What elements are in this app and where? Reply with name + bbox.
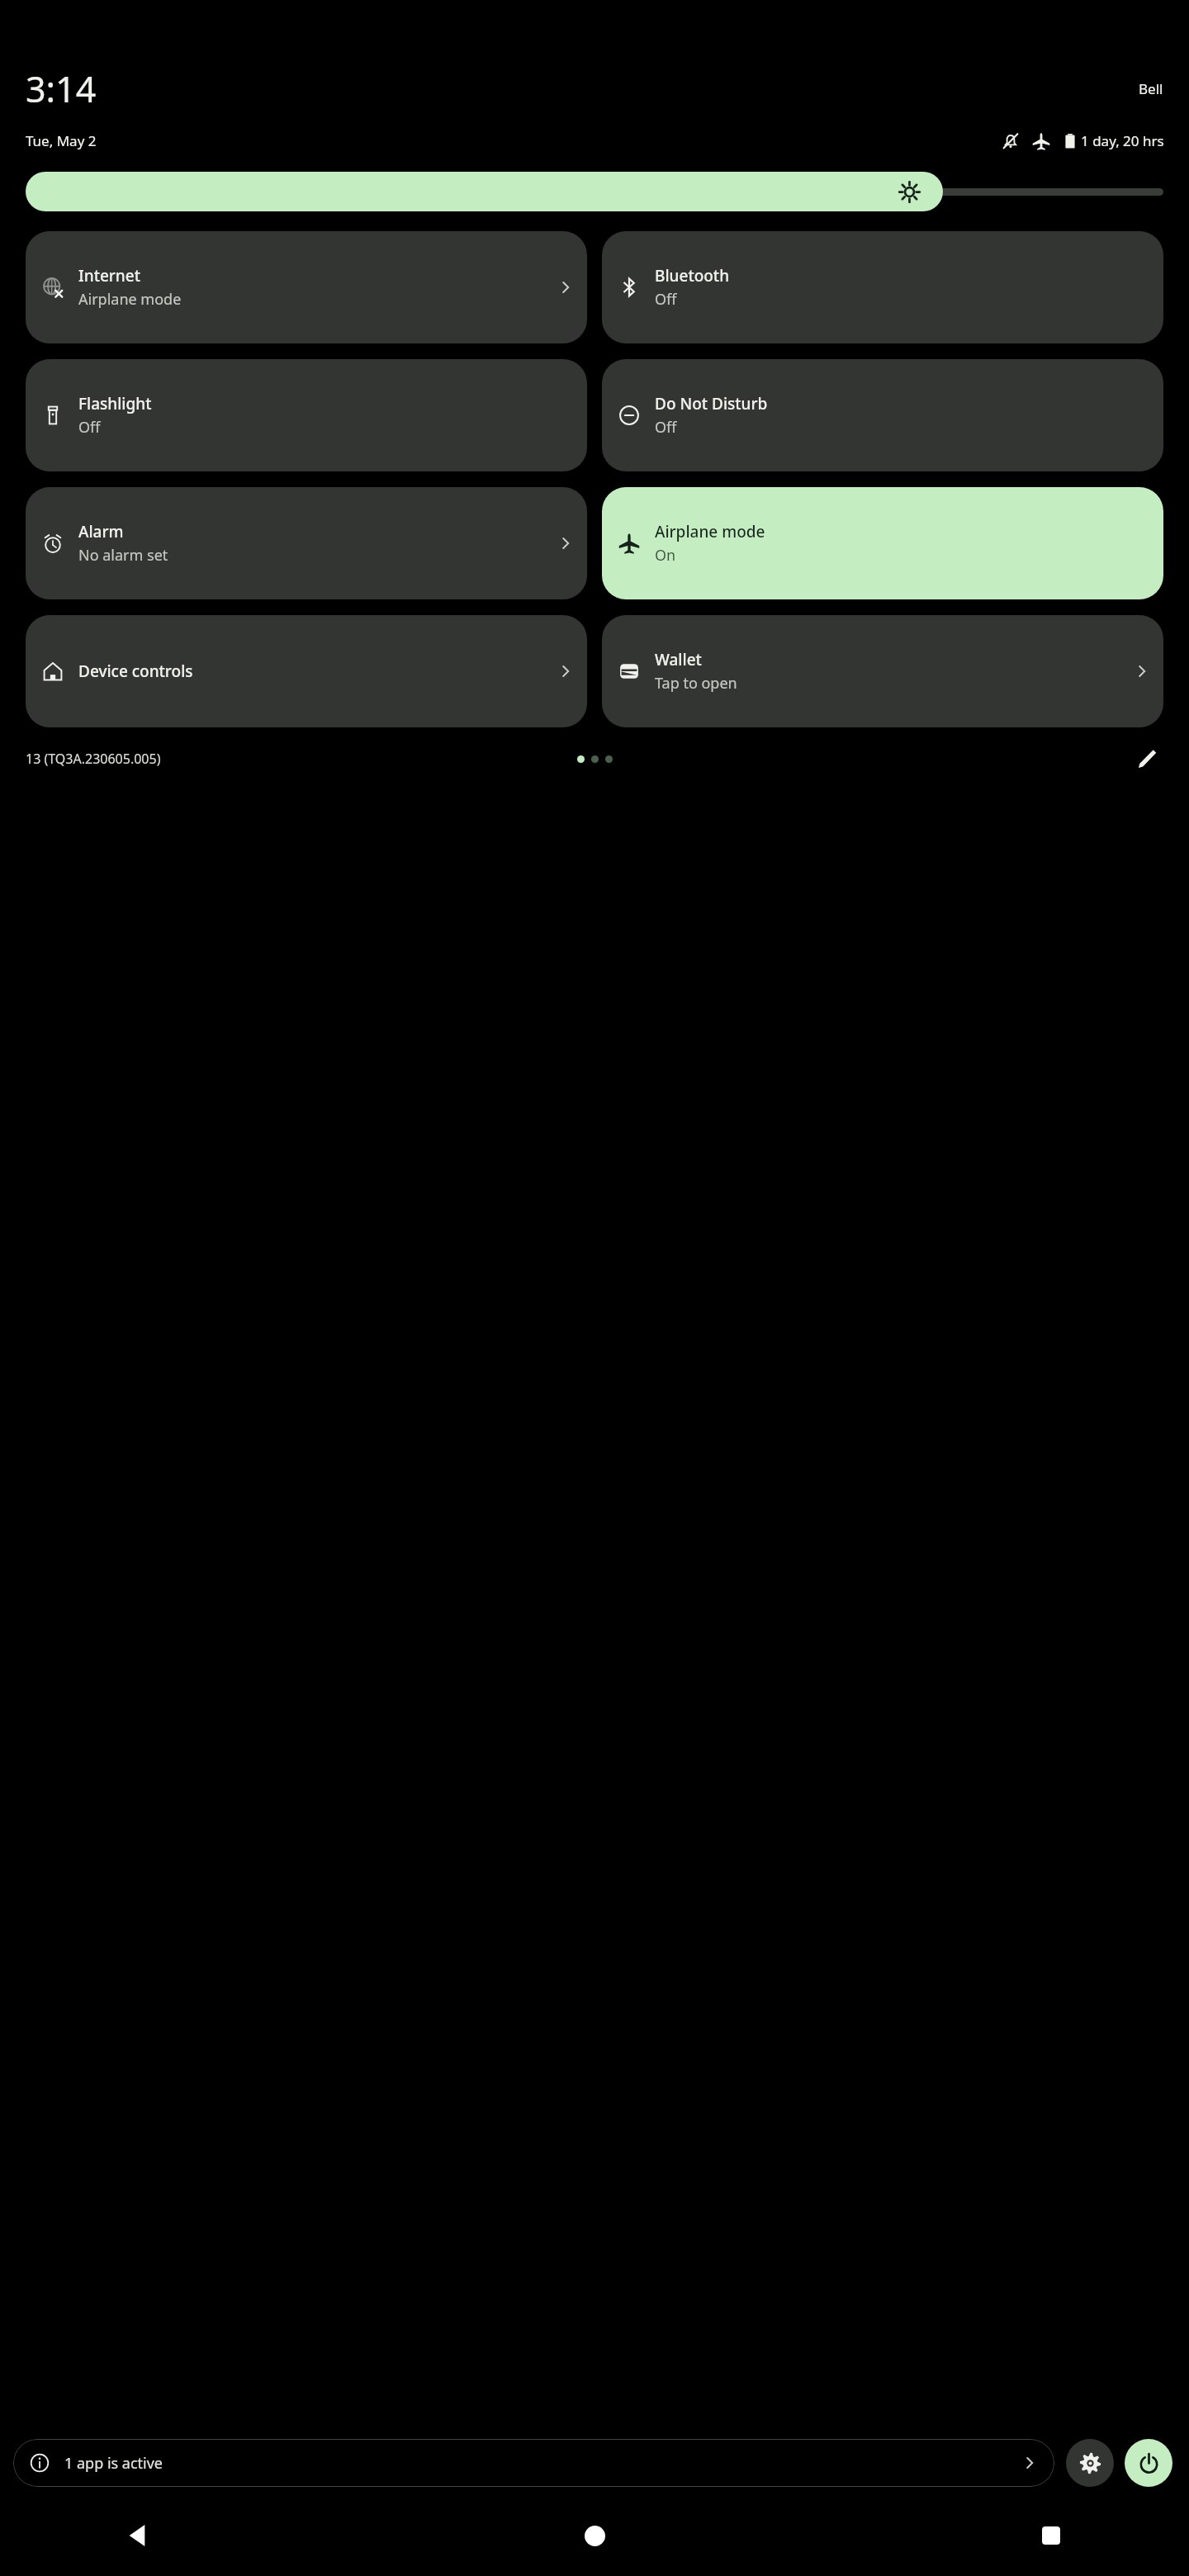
staticText: 13 (TQ3A.230605.005): [26, 750, 161, 768]
button[interactable]: Home: [570, 2511, 619, 2560]
staticText: Bluetooth: [655, 265, 730, 286]
button[interactable]: Alarm: [26, 487, 587, 599]
button[interactable]: Bluetooth: [602, 231, 1163, 343]
button[interactable]: Power: [1125, 2439, 1172, 2487]
button[interactable]: Airplane mode: [602, 487, 1163, 599]
button[interactable]: 1 app is active: [13, 2439, 1054, 2487]
staticText: Off: [78, 417, 101, 438]
staticText: Device controls: [78, 661, 193, 682]
button[interactable]: Wallet: [602, 615, 1163, 727]
staticText: Flashlight: [78, 393, 152, 414]
staticText: Tap to open: [655, 673, 737, 694]
staticText: Do Not Disturb: [655, 393, 768, 414]
button[interactable]: Recent apps: [1026, 2511, 1076, 2560]
staticText: Airplane mode: [655, 521, 765, 542]
staticText: Wallet: [655, 649, 702, 670]
staticText: 3:14: [26, 64, 97, 113]
staticText: Internet: [78, 265, 140, 286]
button[interactable]: Edit tiles: [1130, 742, 1163, 775]
staticText: Airplane mode: [78, 289, 182, 310]
button[interactable]: Back: [113, 2511, 163, 2560]
staticText: Bell: [1139, 79, 1163, 98]
staticText: 1 app is active: [64, 2453, 163, 2474]
staticText: No alarm set: [78, 545, 168, 566]
button[interactable]: Do Not Disturb: [602, 359, 1163, 471]
button[interactable]: [26, 172, 1163, 211]
staticText: 1 day, 20 hrs: [1081, 131, 1164, 150]
staticText: Alarm: [78, 521, 124, 542]
staticText: Off: [655, 417, 677, 438]
button[interactable]: Device controls: [26, 615, 587, 727]
button[interactable]: Flashlight: [26, 359, 587, 471]
staticText: On: [655, 545, 676, 566]
staticText: Tue, May 2: [26, 131, 97, 150]
button[interactable]: Settings: [1066, 2439, 1114, 2487]
button[interactable]: Internet: [26, 231, 587, 343]
staticText: Off: [655, 289, 677, 310]
